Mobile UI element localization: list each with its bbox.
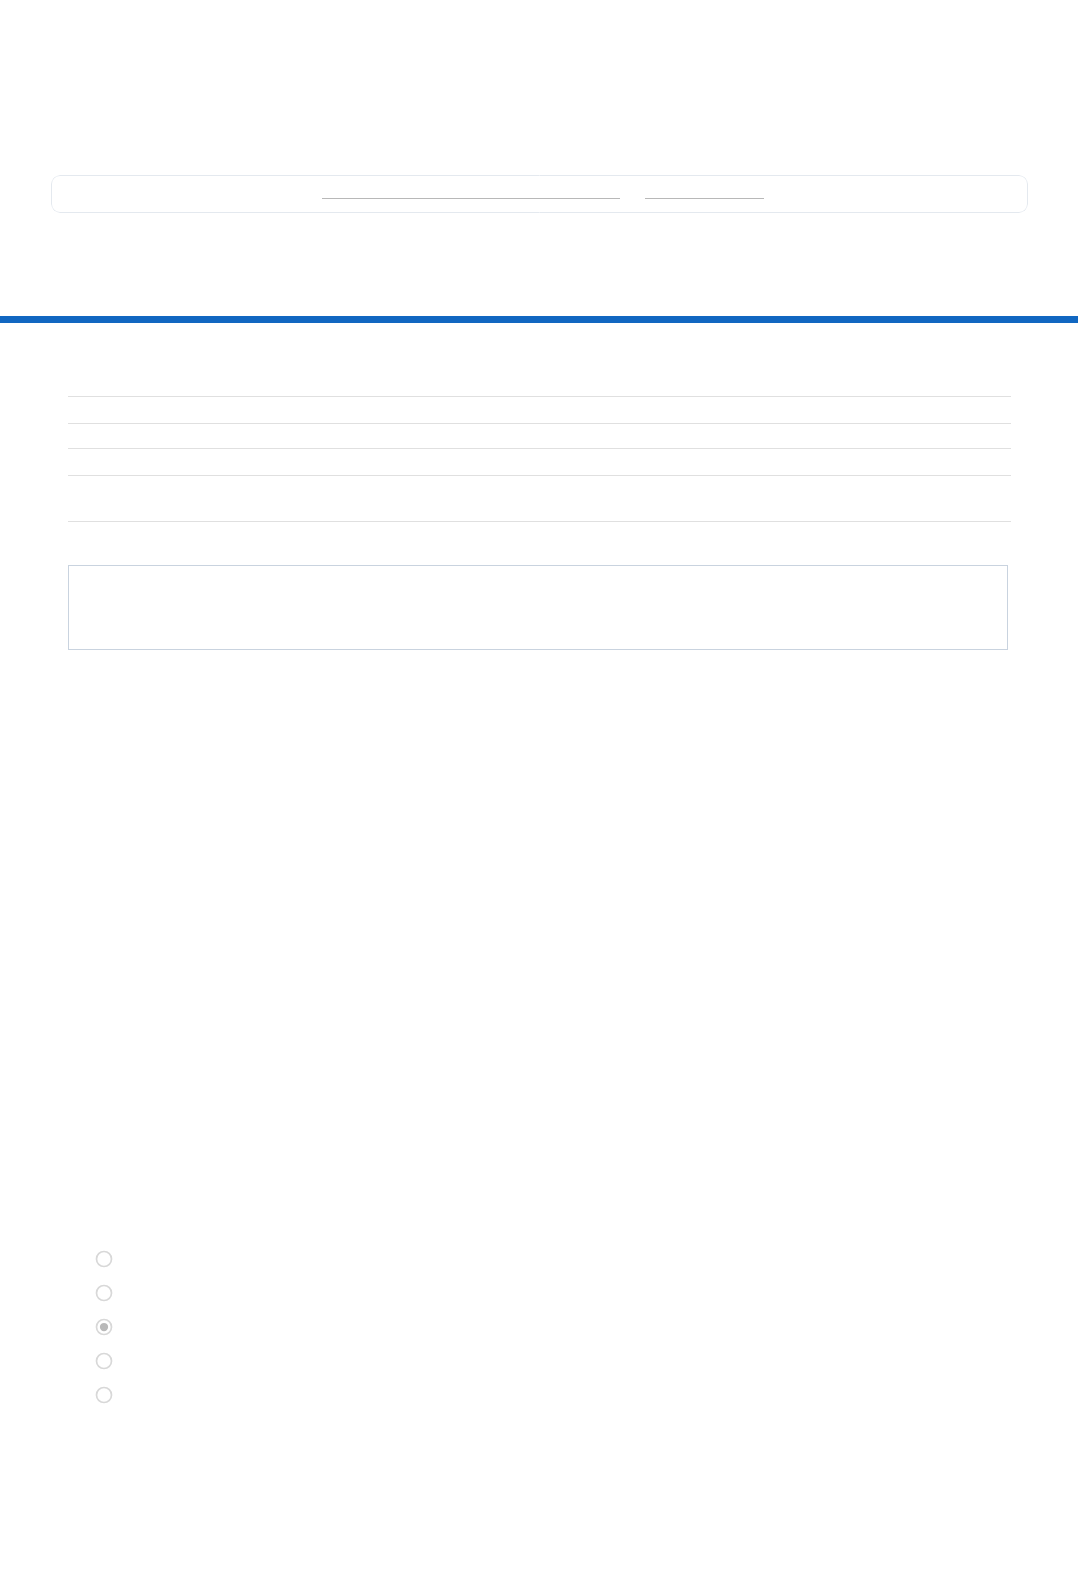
- button[interactable]: Option 5: [92, 1378, 392, 1412]
- button[interactable]: Comment box: [68, 565, 1008, 650]
- button[interactable]: Header field card: [51, 175, 1028, 213]
- button[interactable]: Option 1: [92, 1242, 392, 1276]
- button[interactable]: Option 3: [92, 1310, 392, 1344]
- button[interactable]: Option 4: [92, 1344, 392, 1378]
- button[interactable]: Option 2: [92, 1276, 392, 1310]
